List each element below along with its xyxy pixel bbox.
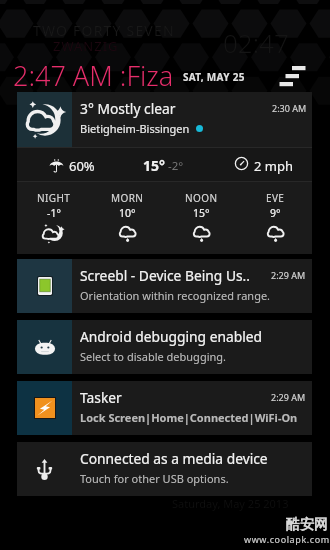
- staticText: 2:47 AM :Fiza: [13, 57, 174, 89]
- staticText: 10°: [119, 206, 136, 220]
- staticText: NIGHT: [37, 191, 71, 205]
- staticText: Screebl - Device Being Us..: [80, 266, 250, 285]
- button[interactable]: MORN: [90, 182, 164, 254]
- staticText: NOON: [185, 191, 218, 205]
- button[interactable]: EVE: [238, 182, 312, 254]
- staticText: Android debugging enabled: [80, 327, 262, 346]
- staticText: -2°: [168, 158, 184, 174]
- button[interactable]: Quick settings: [277, 61, 307, 87]
- staticText: -1°: [47, 206, 61, 220]
- staticText: 3° Mostly clear: [80, 99, 176, 118]
- staticText: 2:29 AM: [271, 391, 306, 403]
- staticText: 9°: [270, 206, 281, 220]
- button[interactable]: Android debugging enabled: [17, 320, 312, 374]
- staticText: ZWANZIG: [53, 37, 119, 55]
- staticText: 酷安网: [286, 516, 328, 534]
- button[interactable]: 3° Mostly clear: [17, 92, 312, 147]
- staticText: 15°: [193, 206, 210, 220]
- staticText: Tasker: [80, 388, 122, 407]
- staticText: Lock Screen|Home|Connected|WiFi-On: [80, 410, 298, 425]
- staticText: 60%: [69, 157, 95, 175]
- staticText: 2:30 AM: [272, 102, 307, 114]
- staticText: MORN: [111, 191, 144, 205]
- staticText: EVE: [266, 191, 285, 205]
- staticText: Connected as a media device: [80, 449, 268, 468]
- staticText: www.coolapk.com: [244, 533, 330, 545]
- staticText: 15°: [143, 156, 165, 175]
- staticText: TWO FORTY SEVEN: [33, 21, 175, 40]
- staticText: 2:29 AM: [271, 269, 306, 281]
- staticText: 2 mph: [254, 157, 294, 175]
- button[interactable]: Tasker: [17, 381, 312, 435]
- button[interactable]: NIGHT: [17, 182, 90, 254]
- staticText: Orientation within recognized range.: [80, 288, 271, 303]
- button[interactable]: Screebl - Device Being Us..: [17, 259, 312, 313]
- staticText: Bietigheim-Bissingen: [80, 121, 190, 136]
- staticText: 02:47: [223, 25, 289, 60]
- staticText: SAT, MAY 25: [183, 70, 245, 84]
- staticText: Saturday, May 25 2013: [172, 496, 289, 511]
- staticText: Select to disable debugging.: [80, 349, 227, 364]
- button[interactable]: Connected as a media device: [17, 442, 312, 496]
- button[interactable]: NOON: [164, 182, 238, 254]
- staticText: Touch for other USB options.: [80, 471, 229, 486]
